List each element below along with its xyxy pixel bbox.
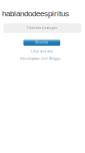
- staticText: Lihat versi web: [31, 50, 53, 53]
- staticText: hablandodeespiritus: [2, 9, 69, 18]
- staticText: Tidak ada postingan.: [26, 26, 58, 30]
- staticText: .: [61, 57, 62, 60]
- staticText: Blogger: [49, 57, 61, 60]
- button[interactable]: Lihat versi web: [31, 50, 53, 53]
- button[interactable]: Beranda: [23, 39, 60, 46]
- staticText: Diberdayakan oleh: [20, 57, 49, 60]
- staticText: Beranda: [35, 41, 48, 44]
